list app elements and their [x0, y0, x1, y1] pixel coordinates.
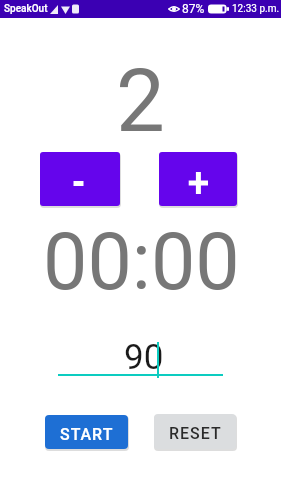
button[interactable]: START: [45, 415, 128, 449]
staticText: 12:33 p.m.: [232, 3, 280, 15]
staticText: 90: [124, 337, 164, 378]
staticText: 87%: [182, 2, 205, 16]
staticText: SpeakOut: [4, 3, 48, 15]
staticText: RESET: [169, 424, 222, 443]
button[interactable]: RESET: [154, 414, 236, 449]
staticText: 00:00: [43, 216, 240, 309]
staticText: START: [60, 425, 114, 444]
button[interactable]: [159, 152, 237, 206]
button[interactable]: [40, 152, 120, 206]
staticText: 2: [116, 50, 165, 152]
